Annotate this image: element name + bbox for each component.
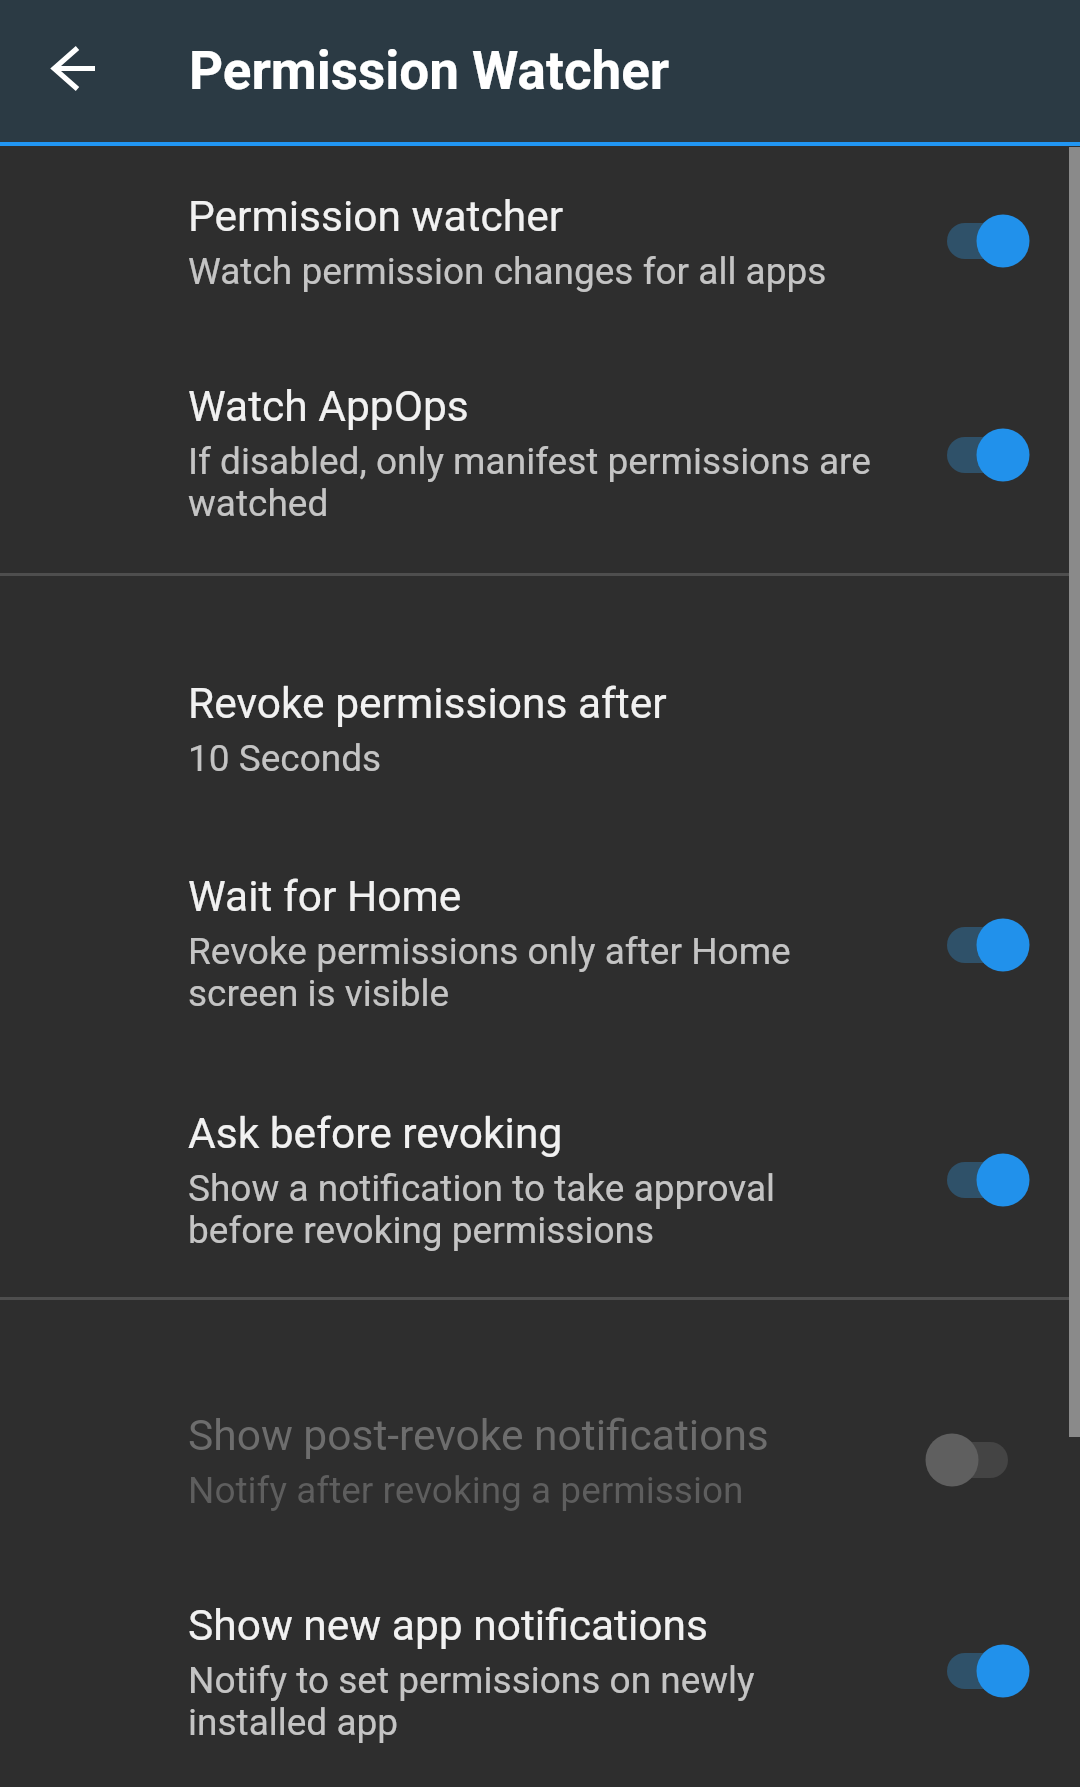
staticText: Permission watcher [188,192,564,242]
staticText: Show a notification to take approval bef… [188,1167,888,1253]
staticText: Permission Watcher [189,40,670,102]
button[interactable]: Show new app notifications, on [920,1631,1040,1711]
staticText: Show new app notifications [188,1601,708,1651]
staticText: Ask before revoking [188,1109,563,1159]
button[interactable]: Permission watcher, on [920,201,1040,281]
staticText: Revoke permissions after [188,679,667,729]
button[interactable]: Show new app notifications [0,1555,1080,1787]
button[interactable]: Wait for Home [0,826,1080,1063]
staticText: Watch permission changes for all apps [188,250,827,293]
staticText: 10 Seconds [188,737,382,780]
button[interactable]: Show post-revoke notifications [0,1365,1080,1555]
staticText: Notify to set permissions on newly insta… [188,1659,888,1745]
button[interactable]: Navigate up [34,31,114,111]
button[interactable]: Ask before revoking [0,1063,1080,1297]
staticText: Notify after revoking a permission [188,1469,744,1512]
staticText: Revoke permissions only after Home scree… [188,930,888,1016]
staticText: If disabled, only manifest permissions a… [188,440,888,526]
button[interactable]: Ask before revoking, on [920,1140,1040,1220]
staticText: Watch AppOps [188,382,469,432]
button[interactable]: Show post-revoke notifications, off [920,1420,1040,1500]
button[interactable]: Permission watcher [0,146,1080,336]
button[interactable]: Watch AppOps [0,336,1080,573]
button[interactable]: Watch AppOps, on [920,415,1040,495]
button[interactable]: Revoke permissions after [0,633,1080,826]
button[interactable]: Wait for Home, on [920,905,1040,985]
staticText: Wait for Home [188,872,462,922]
staticText: Show post-revoke notifications [188,1411,769,1461]
